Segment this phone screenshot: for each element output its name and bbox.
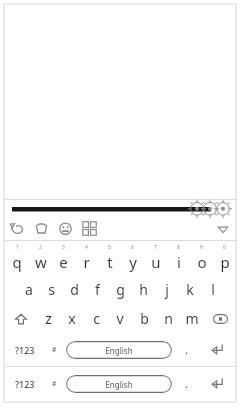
staticText: 6	[131, 244, 134, 251]
staticText: English	[105, 345, 133, 356]
button[interactable]: b	[132, 304, 156, 333]
staticText: 9	[200, 244, 203, 251]
button[interactable]: Backspace	[204, 304, 236, 333]
button[interactable]: #	[43, 367, 66, 400]
button[interactable]: v	[108, 304, 132, 333]
staticText: f	[95, 280, 100, 299]
staticText: k	[186, 280, 194, 299]
button[interactable]: #	[43, 333, 66, 366]
staticText: d	[70, 280, 79, 299]
button[interactable]: English	[66, 375, 172, 393]
staticText: 1	[16, 244, 19, 251]
button[interactable]: Emoji	[58, 221, 73, 236]
button[interactable]: c	[84, 304, 108, 333]
staticText: q	[12, 252, 22, 272]
button[interactable]: .	[172, 333, 200, 366]
staticText: English	[105, 379, 133, 390]
staticText: i	[177, 252, 181, 272]
button[interactable]: 0	[213, 241, 236, 275]
staticText: n	[164, 309, 173, 328]
staticText: #	[52, 345, 57, 355]
staticText: 0	[223, 244, 226, 251]
staticText: e	[59, 252, 68, 272]
button[interactable]: n	[156, 304, 180, 333]
button[interactable]: 2	[29, 241, 52, 275]
button[interactable]: Enter	[200, 367, 235, 400]
button[interactable]: l	[201, 275, 224, 304]
staticText: 5	[108, 244, 111, 251]
staticText: m	[185, 309, 199, 328]
button[interactable]: Undo	[10, 221, 25, 236]
button[interactable]: Hide keyboard	[217, 223, 229, 235]
staticText: v	[116, 309, 124, 328]
button[interactable]: j	[155, 275, 178, 304]
staticText: z	[45, 309, 52, 328]
button[interactable]: Clipboard	[34, 221, 49, 236]
staticText: y	[129, 252, 137, 272]
staticText: ?123	[15, 378, 35, 390]
button[interactable]: 5	[98, 241, 121, 275]
button[interactable]: ?123	[6, 333, 43, 366]
staticText: o	[197, 252, 207, 272]
button[interactable]: More	[82, 221, 97, 236]
staticText: c	[93, 309, 100, 328]
button[interactable]: a	[17, 275, 40, 304]
staticText: h	[139, 280, 148, 299]
button[interactable]: .	[172, 367, 200, 400]
button[interactable]: h	[132, 275, 155, 304]
button[interactable]: Settings	[185, 201, 235, 216]
staticText: u	[151, 252, 161, 272]
button[interactable]: s	[40, 275, 63, 304]
staticText: p	[220, 252, 230, 272]
staticText: #	[52, 379, 57, 389]
staticText: r	[83, 252, 90, 272]
staticText: t	[107, 252, 113, 272]
staticText: j	[165, 280, 169, 299]
staticText: g	[116, 280, 125, 299]
button[interactable]: k	[178, 275, 201, 304]
button[interactable]: g	[109, 275, 132, 304]
button[interactable]: Shift	[5, 304, 36, 333]
staticText: s	[48, 280, 55, 299]
staticText: a	[25, 280, 33, 299]
staticText: 7	[154, 244, 157, 251]
button[interactable]: 6	[121, 241, 144, 275]
staticText: 8	[177, 244, 180, 251]
button[interactable]: ?123	[6, 367, 43, 400]
button[interactable]: m	[180, 304, 204, 333]
button[interactable]: 7	[144, 241, 167, 275]
button[interactable]: 4	[75, 241, 98, 275]
button[interactable]: Enter	[200, 333, 235, 366]
button[interactable]: 3	[52, 241, 75, 275]
button[interactable]: 1	[5, 241, 29, 275]
staticText: 3	[62, 244, 65, 251]
staticText: x	[68, 309, 76, 328]
button[interactable]: 8	[167, 241, 190, 275]
button[interactable]: d	[63, 275, 86, 304]
staticText: 2	[39, 244, 42, 251]
staticText: w	[35, 252, 47, 272]
button[interactable]: x	[60, 304, 84, 333]
staticText: 4	[85, 244, 88, 251]
staticText: l	[211, 280, 215, 299]
staticText: .	[185, 342, 188, 357]
button[interactable]: z	[36, 304, 60, 333]
staticText: .	[185, 376, 188, 391]
staticText: ?123	[15, 344, 35, 356]
button[interactable]: 9	[190, 241, 213, 275]
staticText: b	[140, 309, 149, 328]
button[interactable]: f	[86, 275, 109, 304]
button[interactable]: English	[66, 341, 172, 359]
